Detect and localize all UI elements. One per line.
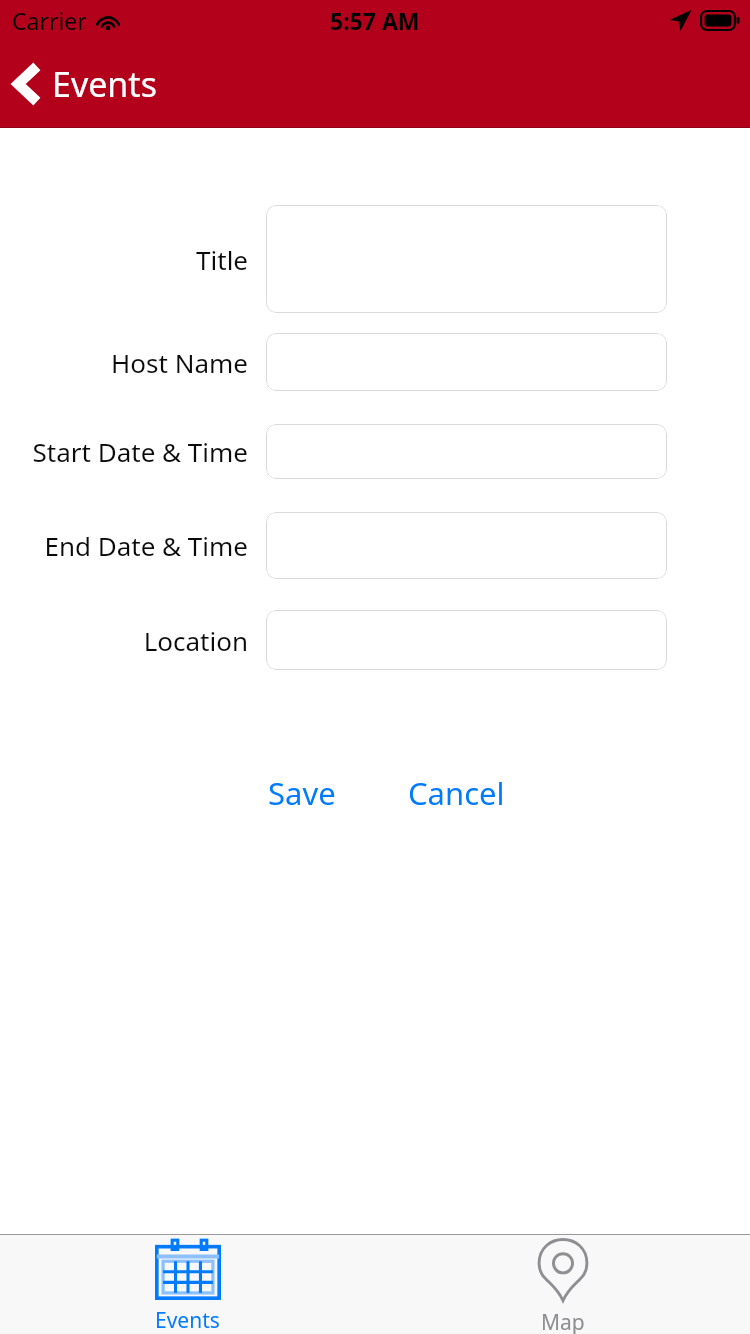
staticText: End Date & Time [0, 528, 248, 563]
button[interactable] [266, 424, 667, 479]
button[interactable]: Events [0, 1234, 375, 1334]
staticText: Events [52, 61, 157, 107]
staticText: Map [541, 1308, 585, 1334]
button[interactable]: Cancel [406, 768, 507, 818]
button[interactable] [266, 333, 667, 391]
staticText: Location [0, 623, 248, 658]
staticText: Carrier [12, 5, 87, 36]
staticText: Cancel [408, 772, 505, 814]
button[interactable] [266, 512, 667, 579]
staticText: 5:57 AM [330, 5, 420, 36]
button[interactable]: Save [266, 768, 338, 818]
button[interactable] [266, 205, 667, 313]
button[interactable]: Map [375, 1234, 750, 1334]
button[interactable]: Back [0, 40, 175, 128]
staticText: Start Date & Time [0, 434, 248, 469]
other: Back [14, 62, 40, 106]
staticText: Title [0, 242, 248, 277]
staticText: Host Name [0, 345, 248, 380]
staticText: Events [155, 1306, 220, 1334]
button[interactable] [266, 610, 667, 670]
staticText: Save [268, 772, 336, 814]
